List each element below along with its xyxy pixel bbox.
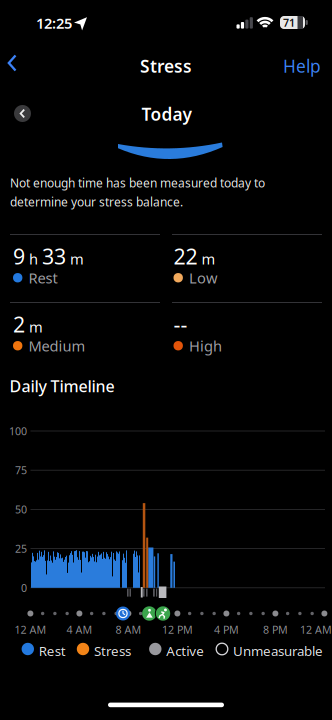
staticText: Unmeasurable — [233, 642, 323, 660]
staticText: 12 AM — [300, 622, 332, 637]
staticText: 71 — [283, 15, 295, 30]
staticText: 2 — [13, 310, 25, 338]
staticText: 75 — [15, 463, 27, 477]
button[interactable]: Activity — [142, 606, 156, 621]
staticText: h — [29, 249, 38, 268]
button[interactable]: Help — [275, 53, 329, 79]
staticText: m — [201, 249, 215, 268]
staticText: 4 PM — [214, 622, 239, 637]
staticText: -- — [173, 310, 187, 338]
staticText: 9 — [13, 242, 25, 270]
staticText: Medium — [28, 336, 85, 355]
button[interactable]: Back — [0, 50, 30, 76]
staticText: Stress — [140, 54, 192, 77]
staticText: 12 PM — [162, 622, 193, 637]
button[interactable]: Sleep event — [116, 606, 130, 620]
staticText: 25 — [15, 541, 27, 556]
button[interactable]: Previous day — [14, 105, 31, 122]
staticText: Rest — [28, 268, 57, 287]
staticText: 12 AM — [14, 622, 46, 637]
staticText: m — [70, 249, 84, 268]
staticText: Rest — [39, 642, 66, 660]
staticText: 4 AM — [66, 622, 92, 637]
staticText: m — [29, 317, 43, 336]
staticText: 12:25 — [36, 13, 72, 33]
staticText: Daily Timeline — [9, 375, 114, 397]
staticText: 50 — [15, 502, 27, 516]
staticText: 22 — [173, 242, 197, 270]
staticText: Help — [283, 54, 321, 77]
staticText: 0 — [21, 581, 27, 595]
staticText: 8 PM — [263, 622, 288, 637]
staticText: 8 AM — [115, 622, 141, 637]
staticText: Not enough time has been measured today … — [10, 175, 265, 210]
staticText: Low — [189, 268, 218, 287]
staticText: Today — [141, 102, 191, 125]
button[interactable]: Activity — [155, 605, 171, 622]
staticText: 100 — [9, 424, 27, 438]
staticText: Active — [166, 642, 204, 660]
staticText: 33 — [42, 242, 66, 270]
staticText: Stress — [94, 642, 131, 660]
staticText: High — [189, 336, 222, 355]
